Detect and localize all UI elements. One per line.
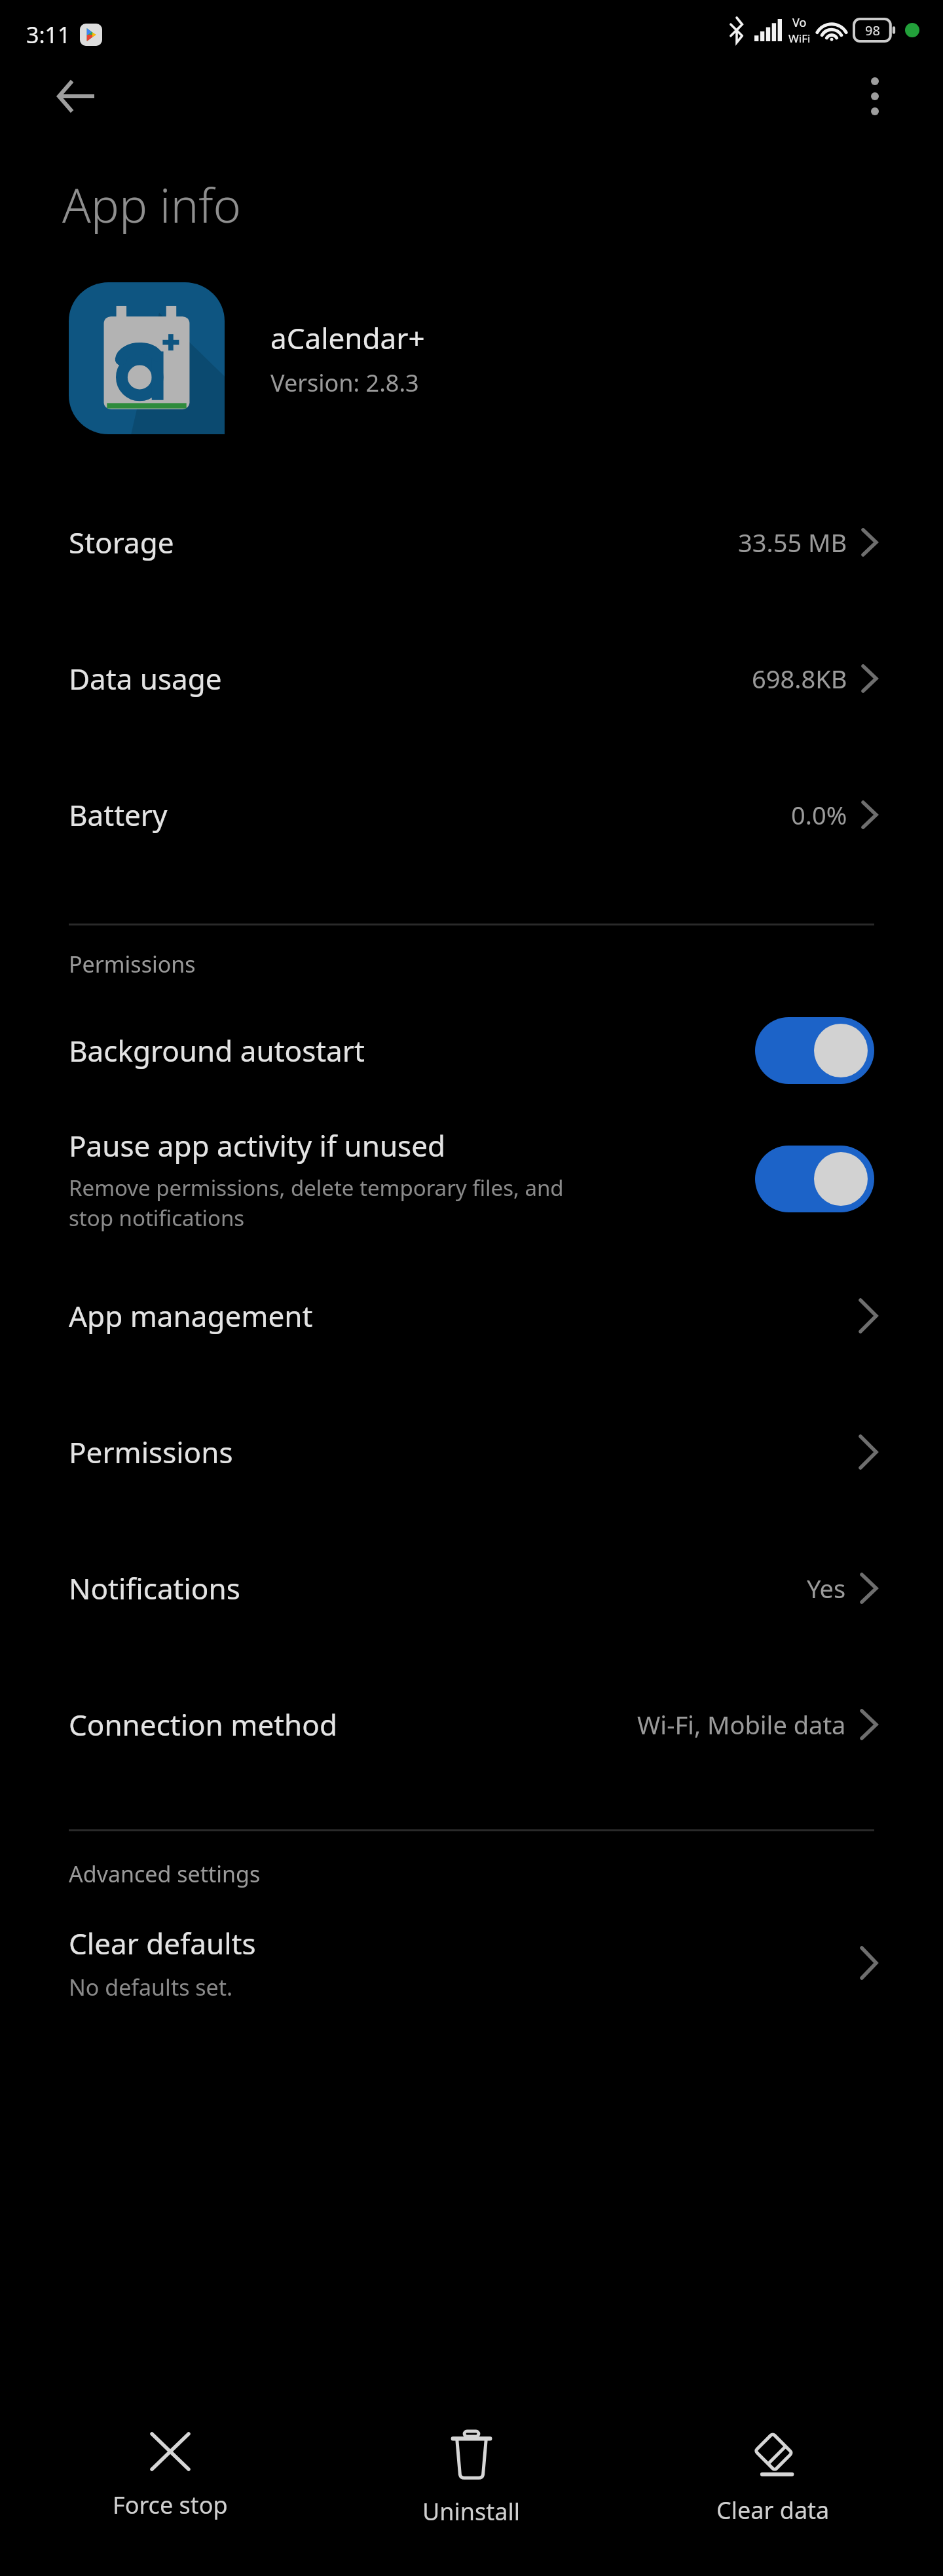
button[interactable]: Pause app activity if unused (0, 1110, 943, 1248)
button[interactable]: Uninstall (341, 2391, 602, 2528)
staticText: Clear defaults (69, 1924, 256, 1963)
button[interactable]: Permissions (0, 1384, 943, 1520)
staticText: App info (62, 172, 242, 236)
staticText: Background autostart (69, 1031, 365, 1070)
staticText: Advanced settings (69, 1859, 261, 1889)
staticText: Clear data (716, 2494, 830, 2526)
staticText: Data usage (69, 659, 222, 698)
button[interactable]: Battery (0, 747, 943, 883)
staticText: Version: 2.8.3 (270, 367, 419, 399)
button[interactable]: Clear defaults (0, 1901, 943, 2025)
staticText: Battery (69, 795, 168, 834)
staticText: Storage (69, 523, 174, 562)
button[interactable]: More options (845, 66, 905, 126)
staticText: 98 (865, 22, 880, 39)
button[interactable]: Connection method (0, 1656, 943, 1793)
staticText: Force stop (113, 2489, 228, 2521)
staticText: App management (69, 1296, 313, 1335)
staticText: Permissions (69, 1432, 233, 1472)
staticText: Notifications (69, 1569, 240, 1608)
staticText: Vo (792, 14, 807, 31)
staticText: Permissions (69, 949, 196, 979)
staticText: 0.0% (791, 798, 847, 832)
staticText: Yes (807, 1571, 846, 1605)
button[interactable]: Back (46, 66, 106, 126)
button[interactable]: Force stop (39, 2391, 301, 2521)
button[interactable]: Toggle on (755, 1017, 874, 1084)
staticText: aCalendar+ (270, 318, 425, 358)
staticText: Pause app activity if unused (69, 1126, 446, 1165)
staticText: WiFi (788, 31, 811, 46)
staticText: 698.8KB (752, 662, 847, 696)
staticText: 33.55 MB (738, 525, 847, 559)
button[interactable]: Toggle on (755, 1146, 874, 1212)
button[interactable]: Data usage (0, 610, 943, 747)
staticText: Uninstall (422, 2495, 521, 2528)
staticText: Connection method (69, 1705, 337, 1744)
button[interactable]: Clear data (642, 2391, 904, 2526)
button[interactable]: Storage (0, 474, 943, 610)
button[interactable]: Notifications (0, 1520, 943, 1656)
staticText: 3:11 (26, 20, 71, 50)
staticText: Remove permissions, delete temporary fil… (69, 1173, 564, 1233)
staticText: No defaults set. (69, 1972, 233, 2002)
button[interactable]: Background autostart (0, 991, 943, 1110)
button[interactable]: App management (0, 1248, 943, 1384)
staticText: Wi-Fi, Mobile data (637, 1708, 846, 1742)
